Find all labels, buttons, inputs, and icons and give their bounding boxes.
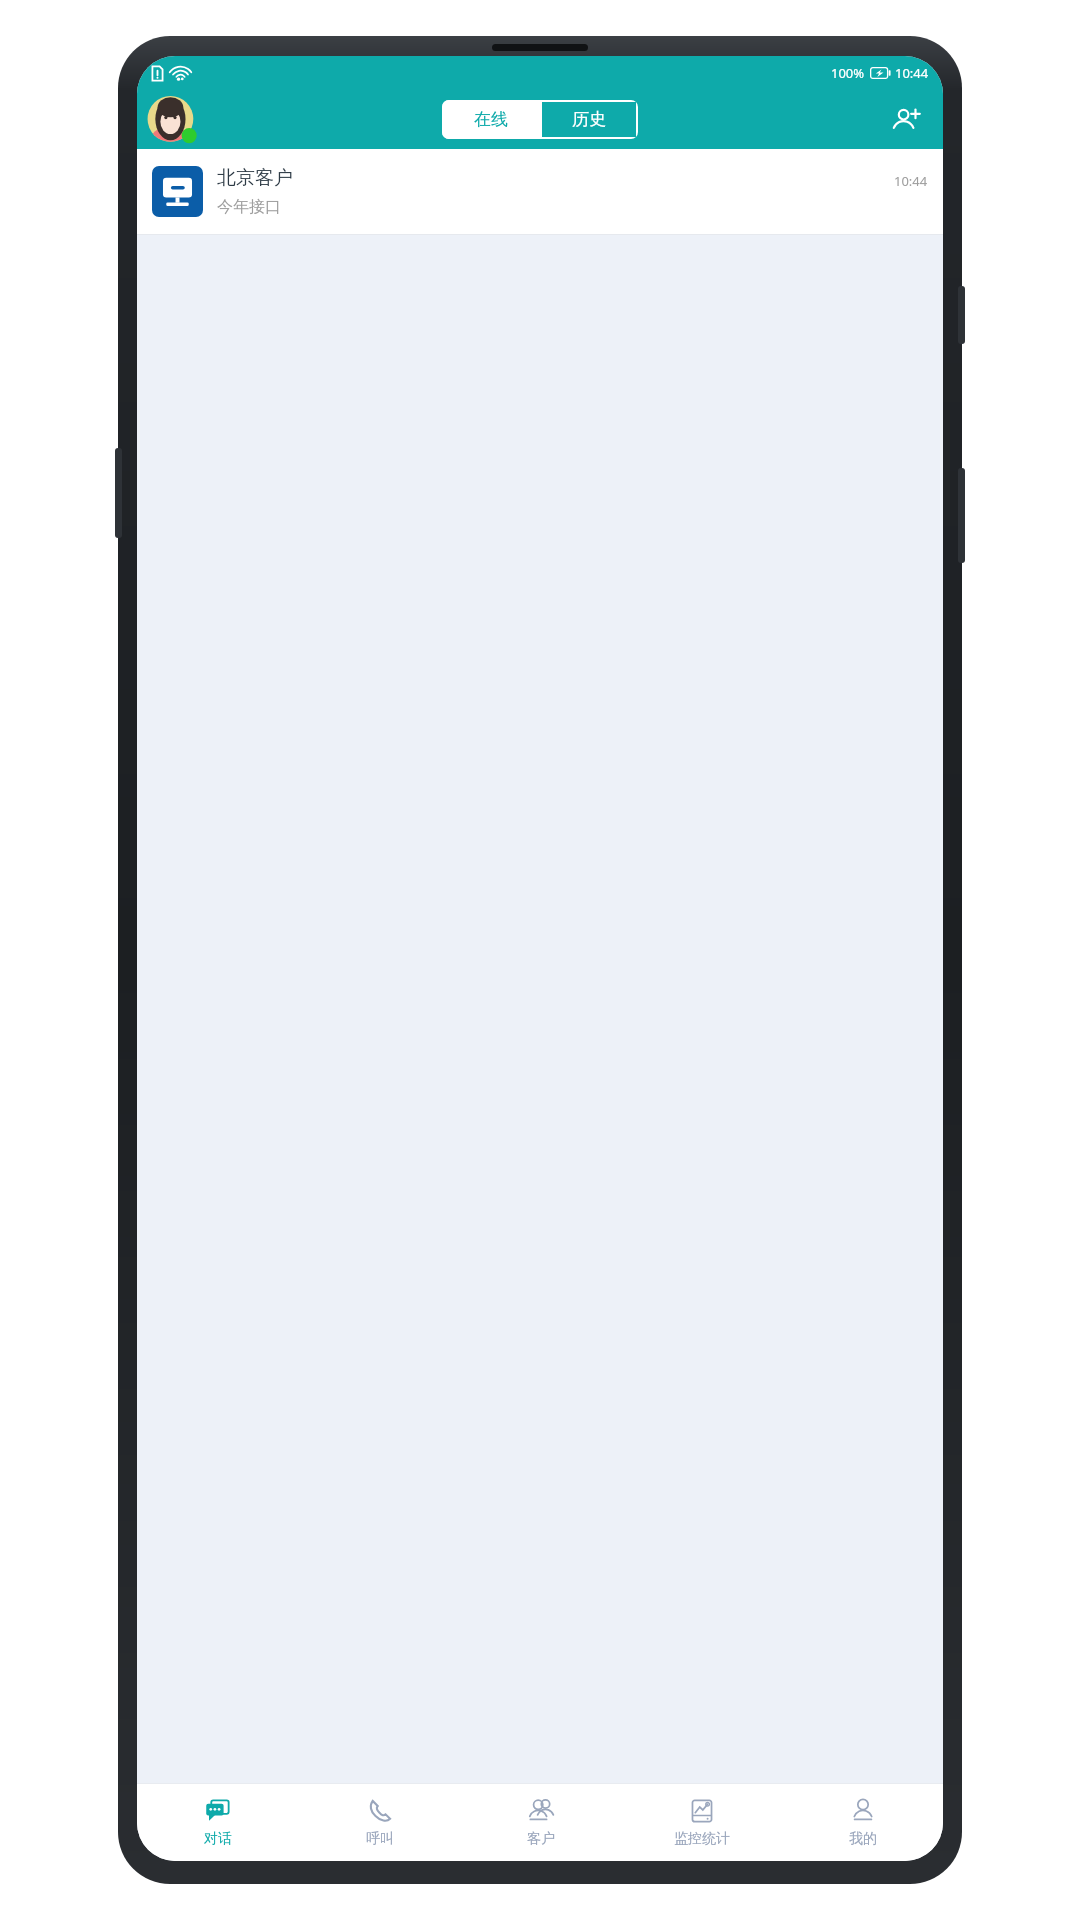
button[interactable]: Profile — [146, 94, 198, 146]
staticText: 10:44 — [895, 64, 929, 82]
button[interactable]: 呼叫 — [299, 1783, 460, 1861]
staticText: 监控统计 — [674, 1830, 730, 1848]
button[interactable]: 对话 — [137, 1783, 299, 1861]
staticText: 历史 — [572, 109, 606, 130]
staticText: 北京客户 — [217, 166, 293, 190]
button[interactable]: 客户 — [460, 1783, 621, 1861]
staticText: 100% — [831, 64, 865, 82]
button[interactable]: 历史 — [542, 102, 636, 137]
staticText: 今年接口 — [217, 197, 281, 217]
staticText: 客户 — [527, 1830, 555, 1848]
staticText: 10:44 — [894, 172, 928, 190]
staticText: 我的 — [849, 1830, 877, 1848]
button[interactable]: 在线 — [442, 100, 540, 139]
button[interactable]: 监控统计 — [621, 1783, 782, 1861]
button[interactable]: 北京客户 — [137, 149, 943, 234]
staticText: 在线 — [474, 109, 508, 130]
staticText: 对话 — [204, 1830, 232, 1848]
button[interactable]: 我的 — [782, 1783, 943, 1861]
button[interactable]: Add contact — [885, 99, 927, 141]
staticText: 呼叫 — [366, 1830, 394, 1848]
